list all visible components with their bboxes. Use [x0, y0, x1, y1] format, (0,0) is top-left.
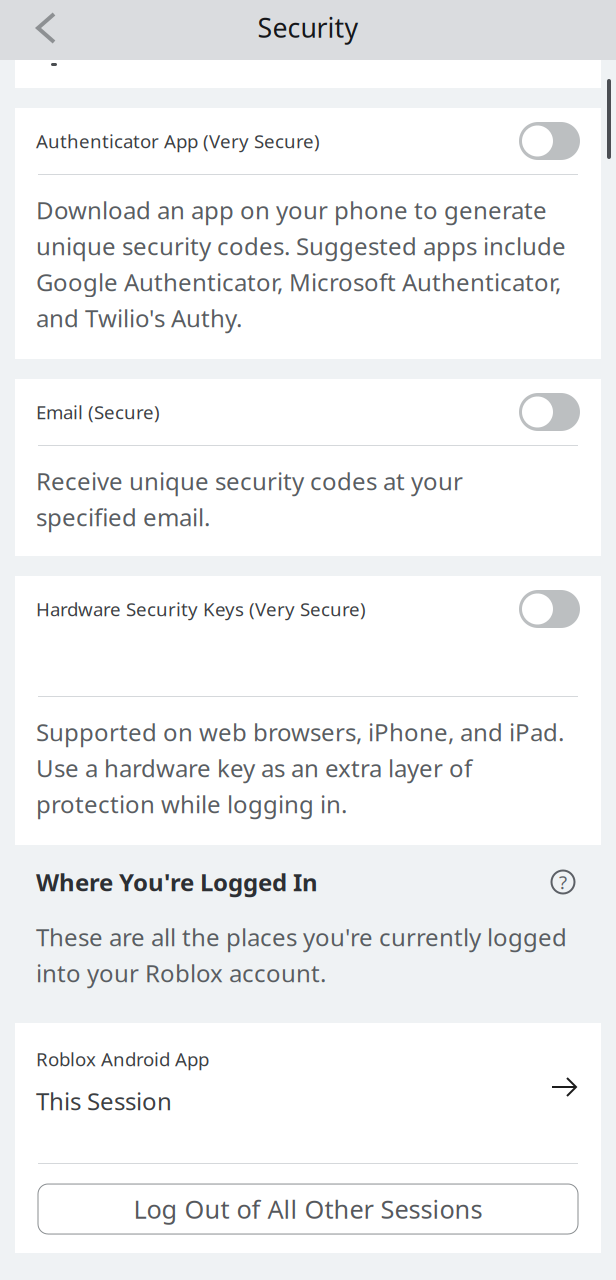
- button[interactable]: Log Out of All Other Sessions: [15, 1164, 601, 1253]
- staticText: Download an app on your phone to generat…: [36, 194, 547, 226]
- button[interactable]: Toggle: [519, 393, 580, 431]
- staticText: Roblox Android App: [36, 1047, 209, 1071]
- staticText: unique security codes. Suggested apps in…: [36, 230, 566, 262]
- staticText: Authenticator App (Very Secure): [36, 129, 320, 153]
- staticText: and Twilio's Authy.: [36, 302, 242, 334]
- staticText: Where You're Logged In: [36, 866, 318, 898]
- staticText: protection while logging in.: [36, 788, 347, 820]
- staticText: Supported on web browsers, iPhone, and i…: [36, 716, 564, 748]
- button[interactable]: Roblox Android App: [15, 1023, 601, 1163]
- button[interactable]: Back: [0, 0, 75, 60]
- button[interactable]: Hardware Security Keys (Very Secure): [15, 576, 601, 642]
- staticText: These are all the places you're currentl…: [36, 921, 567, 953]
- button[interactable]: Authenticator App (Very Secure): [15, 108, 601, 174]
- staticText: Use a hardware key as an extra layer of: [36, 752, 472, 784]
- staticText: specified email.: [36, 501, 210, 533]
- staticText: Hardware Security Keys (Very Secure): [36, 597, 366, 621]
- button[interactable]: Email (Secure): [15, 379, 601, 445]
- staticText: Email (Secure): [36, 400, 160, 424]
- staticText: Log Out of All Other Sessions: [133, 1192, 482, 1226]
- staticText: Security: [257, 10, 358, 45]
- staticText: Google Authenticator, Microsoft Authenti…: [36, 266, 561, 298]
- button[interactable]: Toggle: [519, 122, 580, 160]
- button[interactable]: Toggle: [519, 590, 580, 628]
- staticText: This Session: [36, 1085, 172, 1117]
- staticText: ?: [559, 870, 567, 894]
- staticText: Receive unique security codes at your: [36, 465, 463, 497]
- staticText: into your Roblox account.: [36, 957, 326, 989]
- button[interactable]: Help: [549, 869, 580, 895]
